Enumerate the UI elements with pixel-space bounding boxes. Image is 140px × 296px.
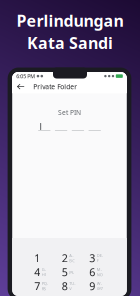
staticText: 9 bbox=[89, 279, 95, 293]
staticText: DEF bbox=[97, 253, 103, 263]
staticText: JKL bbox=[69, 269, 74, 275]
button[interactable]: 6 bbox=[83, 265, 111, 279]
staticText: PQRS bbox=[42, 281, 48, 291]
staticText: 6:05 PM bbox=[16, 73, 35, 80]
staticText: 1 bbox=[34, 251, 40, 265]
staticText: WXYZ bbox=[97, 281, 103, 291]
button[interactable]: 5 bbox=[56, 265, 83, 279]
staticText: 6 bbox=[89, 265, 95, 279]
staticText: 7 bbox=[34, 279, 40, 293]
staticText: Set PIN bbox=[58, 108, 81, 117]
staticText: 2 bbox=[62, 251, 68, 265]
button[interactable]: 1 bbox=[28, 251, 56, 265]
staticText: Perlindungan bbox=[16, 10, 123, 31]
button[interactable]: 2 bbox=[56, 251, 83, 265]
staticText: 8 bbox=[62, 279, 68, 293]
staticText: GHI bbox=[42, 267, 46, 277]
button[interactable]: 9 bbox=[83, 279, 111, 293]
staticText: ABC bbox=[69, 253, 75, 263]
staticText: 5 bbox=[62, 265, 68, 279]
button[interactable]: 4 bbox=[28, 265, 56, 279]
staticText: TUV bbox=[69, 281, 75, 291]
button[interactable]: 3 bbox=[83, 251, 111, 265]
staticText: MNO bbox=[97, 267, 103, 277]
staticText: 3 bbox=[89, 251, 95, 265]
button[interactable]: 8 bbox=[56, 279, 83, 293]
button[interactable]: 7 bbox=[28, 279, 56, 293]
staticText: Kata Sandi bbox=[27, 32, 113, 53]
staticText: Private Folder bbox=[33, 82, 77, 91]
button[interactable]: Back bbox=[14, 80, 27, 93]
staticText: 4 bbox=[34, 265, 40, 279]
